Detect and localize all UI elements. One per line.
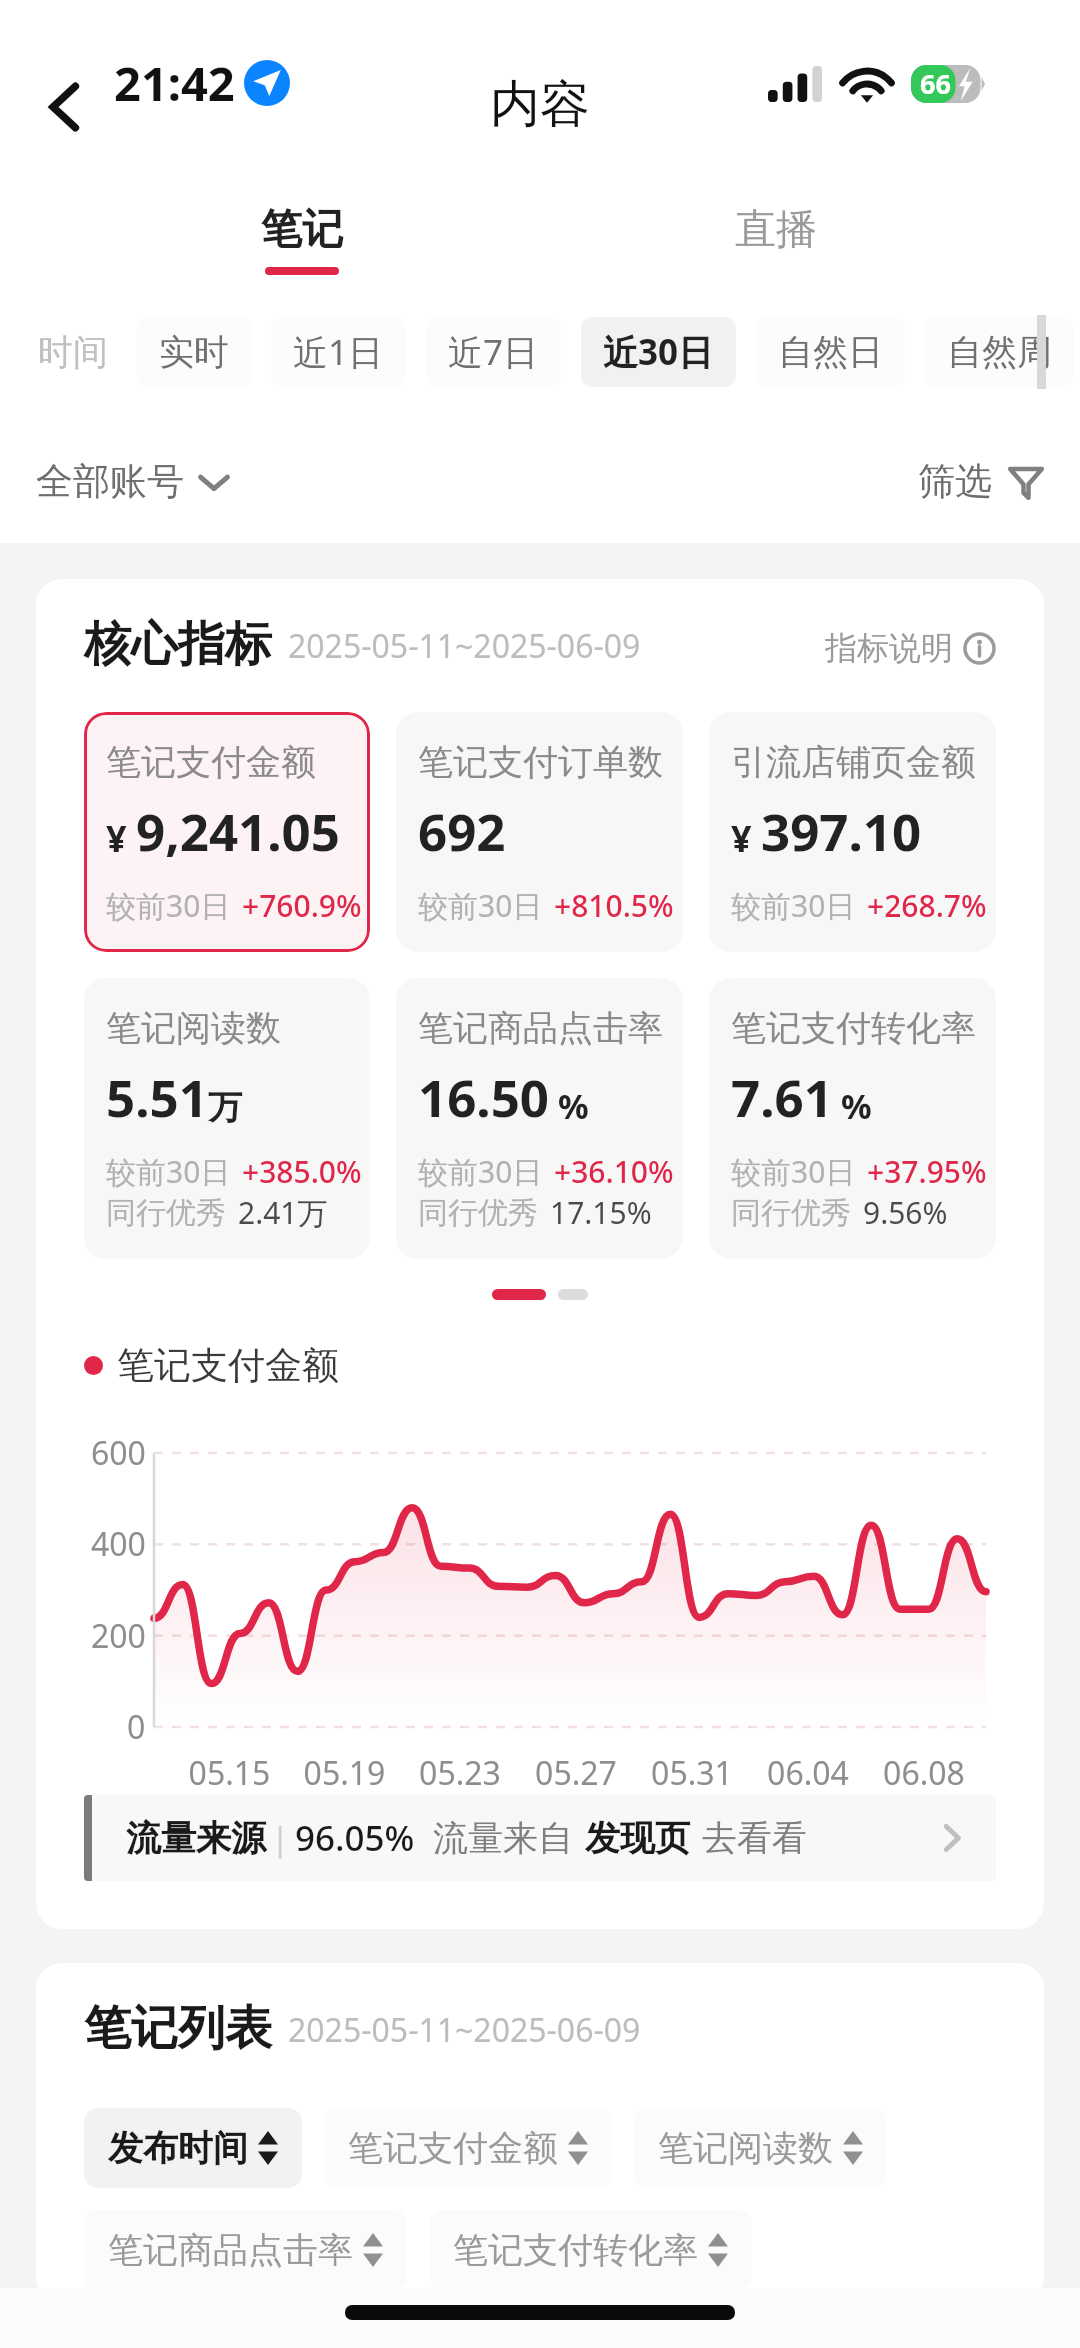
staticText: +810.5% <box>554 885 674 926</box>
staticText: 同行优秀 <box>731 1194 851 1232</box>
button[interactable]: 笔记 <box>65 190 539 288</box>
staticText: 05.23 <box>402 1751 518 1795</box>
staticText: 较前30日 <box>731 1151 856 1192</box>
staticText: 较前30日 <box>418 1151 543 1192</box>
button[interactable]: 笔记支付转化率 <box>429 2210 752 2290</box>
staticText: 发布时间 <box>108 2126 248 2170</box>
staticText: % <box>841 1083 872 1129</box>
staticText: 笔记 <box>261 204 343 256</box>
staticText: 笔记支付转化率 <box>731 1006 976 1050</box>
staticText: 05.27 <box>518 1751 634 1795</box>
button[interactable]: Back <box>25 67 105 147</box>
button[interactable]: 全部账号 <box>36 458 230 505</box>
button[interactable]: 指标说明 <box>825 628 996 674</box>
staticText: 流量来源 <box>126 1816 266 1860</box>
staticText: 全部账号 <box>36 458 184 505</box>
staticText: ¥ <box>106 814 127 863</box>
staticText: 600 <box>91 1431 146 1475</box>
staticText: 近1日 <box>293 328 384 376</box>
staticText: 05.15 <box>172 1751 287 1795</box>
button[interactable]: 笔记阅读数 <box>84 978 370 1259</box>
staticText: +36.10% <box>554 1151 674 1192</box>
button[interactable]: 自然日 <box>756 317 905 387</box>
staticText: 笔记阅读数 <box>658 2126 833 2170</box>
staticText: 直播 <box>735 204 817 256</box>
button[interactable]: 发布时间 <box>84 2108 302 2188</box>
button[interactable]: 流量来源 <box>84 1795 996 1881</box>
staticText: 同行优秀 <box>418 1194 538 1232</box>
button[interactable]: 笔记支付金额 <box>324 2108 612 2188</box>
button[interactable]: 近30日 <box>581 317 736 387</box>
staticText: 笔记商品点击率 <box>108 2228 353 2272</box>
button[interactable]: 笔记支付转化率 <box>709 978 996 1259</box>
staticText: 16.50 <box>418 1062 550 1131</box>
staticText: 同行优秀 <box>106 1194 226 1232</box>
button[interactable]: 直播 <box>539 190 1013 288</box>
staticText: 笔记商品点击率 <box>418 1006 663 1050</box>
staticText: 9.56% <box>863 1192 948 1233</box>
staticText: % <box>558 1083 589 1129</box>
button[interactable]: 筛选 <box>918 458 1044 505</box>
staticText: 笔记支付金额 <box>348 2126 558 2170</box>
staticText: 2025-05-11~2025-06-09 <box>288 2008 641 2052</box>
staticText: 笔记支付金额 <box>117 1342 339 1389</box>
staticText: 5.51 <box>106 1062 208 1131</box>
staticText: 9,241.05 <box>136 796 340 865</box>
staticText: 692 <box>418 796 506 865</box>
staticText: 06.08 <box>866 1751 982 1795</box>
staticText: 近7日 <box>448 328 539 376</box>
staticText: 核心指标 <box>84 615 272 674</box>
staticText: 7.61 <box>731 1062 833 1131</box>
staticText: 笔记支付订单数 <box>418 740 663 784</box>
staticText: 2.41万 <box>238 1192 328 1233</box>
staticText: 06.04 <box>750 1751 866 1795</box>
staticText: 较前30日 <box>106 885 231 926</box>
staticText: +268.7% <box>867 885 987 926</box>
button[interactable]: 实时 <box>137 317 251 387</box>
staticText: 66 <box>920 65 951 101</box>
button[interactable]: 近1日 <box>271 317 406 387</box>
button[interactable]: 笔记支付金额 <box>84 712 370 952</box>
staticText: | <box>271 1816 290 1861</box>
staticText: 近30日 <box>603 328 714 376</box>
staticText: 0 <box>127 1705 146 1749</box>
staticText: 笔记阅读数 <box>106 1006 281 1050</box>
staticText: 筛选 <box>918 458 992 505</box>
staticText: 指标说明 <box>825 628 953 668</box>
staticText: 96.05% <box>295 1814 415 1862</box>
button[interactable]: 笔记支付订单数 <box>396 712 683 952</box>
staticText: 397.10 <box>761 796 922 865</box>
staticText: 去看看 <box>702 1816 807 1860</box>
button[interactable]: 自然周 <box>925 317 1074 387</box>
staticText: 400 <box>91 1522 146 1566</box>
staticText: 引流店铺页金额 <box>731 740 976 784</box>
staticText: 笔记支付转化率 <box>453 2228 698 2272</box>
staticText: 内容 <box>490 73 590 136</box>
staticText: +385.0% <box>242 1151 362 1192</box>
staticText: 发现页 <box>585 1816 690 1860</box>
staticText: 自然日 <box>778 330 883 374</box>
staticText: +37.95% <box>867 1151 987 1192</box>
staticText: 较前30日 <box>106 1151 231 1192</box>
staticText: ¥ <box>731 814 752 863</box>
button[interactable]: 近7日 <box>426 317 561 387</box>
staticText: 较前30日 <box>418 885 543 926</box>
staticText: 万 <box>208 1086 242 1129</box>
staticText: 时间 <box>38 330 108 374</box>
staticText: 05.31 <box>634 1751 750 1795</box>
staticText: 17.15% <box>550 1192 652 1233</box>
staticText: 流量来自 <box>433 1816 573 1860</box>
button[interactable]: 笔记阅读数 <box>634 2108 887 2188</box>
staticText: 实时 <box>159 330 229 374</box>
staticText: 21:42 <box>114 51 235 115</box>
staticText: +760.9% <box>242 885 362 926</box>
staticText: 200 <box>91 1614 146 1658</box>
staticText: 2025-05-11~2025-06-09 <box>288 624 641 668</box>
staticText: 自然周 <box>947 330 1052 374</box>
button[interactable]: 笔记商品点击率 <box>84 2210 407 2290</box>
button[interactable]: 笔记商品点击率 <box>396 978 683 1259</box>
staticText: 05.19 <box>287 1751 402 1795</box>
staticText: 笔记支付金额 <box>106 740 316 784</box>
button[interactable]: 引流店铺页金额 <box>709 712 996 952</box>
staticText: 较前30日 <box>731 885 856 926</box>
